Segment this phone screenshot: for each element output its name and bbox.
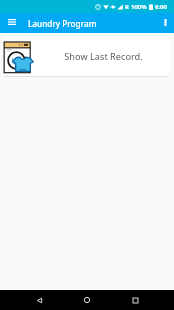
button[interactable]: Open navigation drawer <box>0 13 24 33</box>
button[interactable]: Recent apps <box>125 290 145 310</box>
button[interactable]: Home <box>77 290 97 310</box>
staticText: Laundry Program <box>28 18 97 29</box>
staticText: 8:00 <box>155 3 167 11</box>
button[interactable]: More options <box>157 13 174 33</box>
staticText: 100% <box>131 3 147 11</box>
staticText: Show Last Record. <box>64 50 143 63</box>
button[interactable]: Show Last Record. <box>4 37 169 76</box>
button[interactable]: Back <box>29 290 49 310</box>
staticText: R <box>125 3 129 11</box>
